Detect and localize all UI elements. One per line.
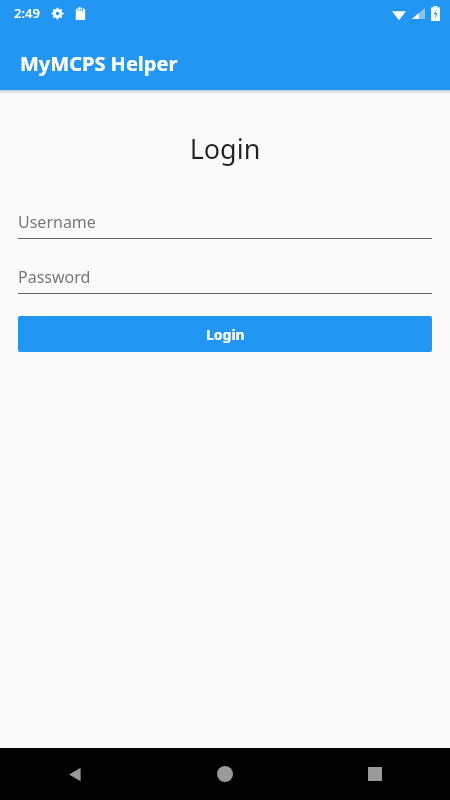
button[interactable]: Username	[18, 206, 432, 239]
button[interactable]: Back	[0, 748, 150, 800]
button[interactable]: Login	[18, 316, 432, 352]
staticText: Password	[18, 266, 91, 288]
staticText: Username	[18, 211, 96, 233]
staticText: 2:49	[14, 4, 40, 22]
button[interactable]: Password	[18, 261, 432, 294]
staticText: Login	[206, 325, 245, 344]
staticText: MyMCPS Helper	[20, 50, 178, 77]
button[interactable]: Home	[150, 748, 300, 800]
staticText: Login	[0, 130, 450, 167]
button[interactable]: Recent apps	[300, 748, 450, 800]
